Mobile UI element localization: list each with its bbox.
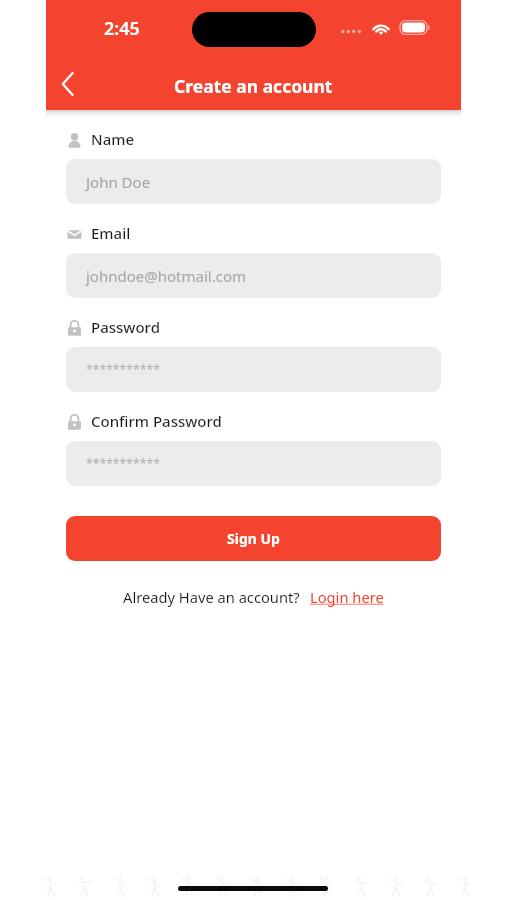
- button[interactable]: johndoe@hotmail.com: [66, 253, 441, 298]
- button[interactable]: John Doe: [66, 159, 441, 204]
- staticText: ***********: [86, 361, 160, 378]
- staticText: John Doe: [86, 172, 151, 192]
- staticText: Confirm Password: [91, 411, 222, 431]
- staticText: Email: [91, 223, 131, 243]
- staticText: Name: [91, 129, 135, 149]
- staticText: johndoe@hotmail.com: [86, 266, 246, 286]
- staticText: Already Have an account?: [123, 587, 300, 607]
- button[interactable]: ***********: [66, 441, 441, 486]
- staticText: Login here: [310, 587, 384, 607]
- button[interactable]: Login here: [310, 587, 384, 607]
- staticText: Create an account: [174, 74, 333, 98]
- staticText: Sign Up: [227, 529, 280, 548]
- staticText: 2:45: [104, 16, 140, 41]
- staticText: ***********: [86, 455, 160, 472]
- staticText: Password: [91, 317, 160, 337]
- button[interactable]: ***********: [66, 347, 441, 392]
- button[interactable]: Back: [46, 62, 90, 106]
- button[interactable]: Sign Up: [66, 516, 441, 561]
